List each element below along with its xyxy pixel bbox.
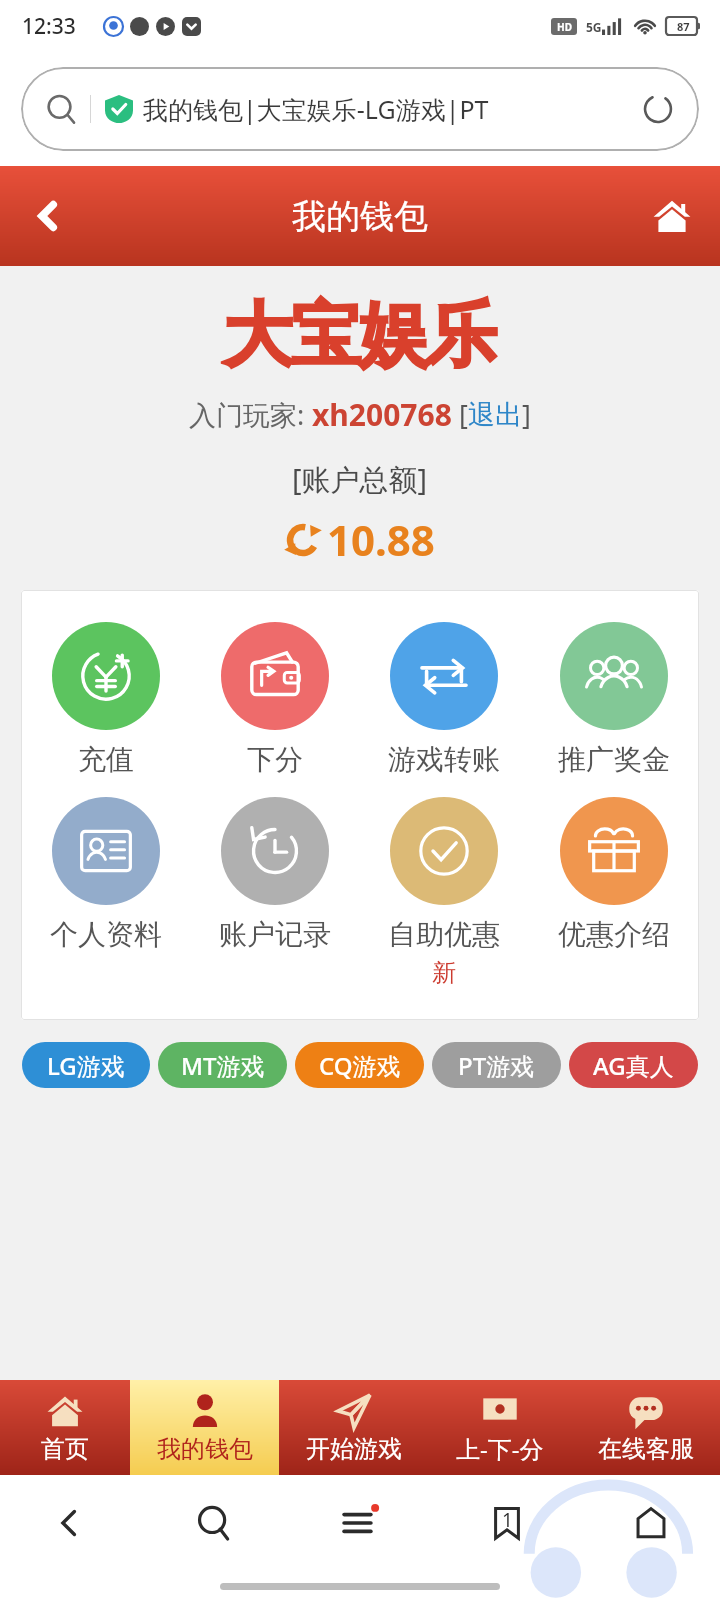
staticText: LG游戏 — [47, 1049, 125, 1082]
button[interactable]: LG游戏 — [22, 1042, 150, 1088]
button[interactable]: AG真人 — [569, 1042, 698, 1088]
button[interactable]: 游戏转账 — [359, 612, 529, 787]
button[interactable]: Back — [42, 1496, 96, 1550]
other: Reload — [641, 92, 675, 126]
button[interactable]: 我的钱包 — [130, 1380, 279, 1475]
button[interactable]: 账户记录 — [190, 787, 359, 962]
staticText: AG真人 — [593, 1049, 674, 1082]
staticText: 我的钱包|大宝娱乐-LG游戏|PT — [143, 92, 633, 126]
button[interactable]: 个人资料 — [21, 787, 190, 962]
button[interactable]: 开始游戏 — [279, 1380, 428, 1475]
button[interactable]: Back — [0, 166, 96, 266]
staticText: 我的钱包 — [157, 1434, 253, 1464]
staticText: 首页 — [41, 1434, 89, 1464]
staticText: CQ游戏 — [319, 1049, 401, 1082]
button[interactable]: Refresh balance — [285, 511, 435, 568]
button[interactable]: Search — [21, 67, 699, 151]
staticText: 5G — [586, 19, 602, 35]
button[interactable]: 推广奖金 — [529, 612, 699, 787]
other: Refresh balance — [285, 522, 321, 558]
other: Search — [45, 93, 78, 126]
staticText: 开始游戏 — [306, 1434, 402, 1464]
staticText: 推广奖金 — [558, 742, 670, 777]
staticText: 个人资料 — [50, 917, 162, 952]
staticText: 1 — [502, 1507, 513, 1533]
button[interactable]: Menu — [331, 1494, 389, 1552]
button[interactable]: Home — [624, 166, 720, 266]
staticText: PT游戏 — [458, 1049, 535, 1082]
staticText: 入门玩家: — [189, 396, 312, 433]
button[interactable]: 充值 — [21, 612, 190, 787]
staticText: 12:33 — [22, 12, 76, 41]
staticText: 下分 — [247, 742, 303, 777]
button[interactable]: 退出 — [468, 398, 522, 432]
staticText: 充值 — [78, 742, 134, 777]
staticText: 新 — [432, 958, 456, 988]
staticText: MT游戏 — [181, 1049, 265, 1082]
staticText: 账户记录 — [219, 917, 331, 952]
button[interactable]: CQ游戏 — [295, 1042, 424, 1088]
button[interactable]: 下分 — [190, 612, 359, 787]
button[interactable]: MT游戏 — [158, 1042, 287, 1088]
staticText: [账户总额] — [292, 459, 428, 499]
button[interactable]: 上-下-分 — [428, 1380, 571, 1475]
button[interactable]: Bookmarks — [480, 1496, 534, 1550]
button[interactable]: 在线客服 — [571, 1380, 720, 1475]
button[interactable]: 优惠介绍 — [529, 787, 699, 962]
button[interactable]: PT游戏 — [432, 1042, 561, 1088]
staticText: ] — [522, 396, 531, 433]
staticText: 10.88 — [327, 511, 435, 568]
button[interactable]: Home — [624, 1496, 678, 1550]
staticText: 自助优惠 — [388, 917, 500, 952]
staticText: 优惠介绍 — [558, 917, 670, 952]
staticText: [ — [452, 396, 468, 433]
staticText: 我的钱包 — [292, 195, 428, 238]
staticText: 87 — [677, 19, 690, 34]
staticText: 在线客服 — [598, 1434, 694, 1464]
staticText: 退出 — [468, 398, 522, 432]
button[interactable]: 自助优惠 — [359, 787, 529, 998]
button[interactable]: 首页 — [0, 1380, 130, 1475]
staticText: 大宝娱乐 — [224, 292, 496, 380]
staticText: xh200768 — [312, 394, 452, 435]
staticText: 游戏转账 — [388, 742, 500, 777]
button[interactable]: Search — [187, 1496, 241, 1550]
staticText: HD — [557, 20, 572, 34]
staticText: 上-下-分 — [456, 1432, 544, 1465]
